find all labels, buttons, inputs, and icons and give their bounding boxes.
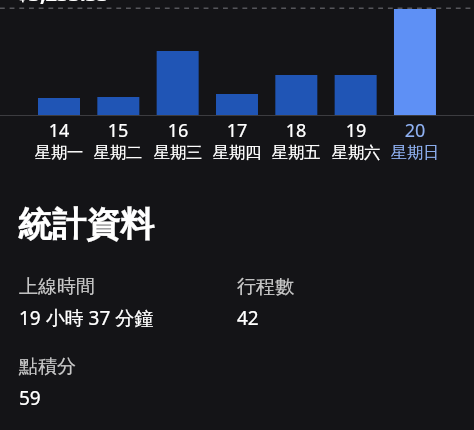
staticText: 19 [316, 118, 396, 143]
staticText: $3,233.33 [17, 0, 109, 7]
button[interactable]: 17 [197, 117, 277, 165]
staticText: 上線時間 [19, 275, 95, 299]
staticText: 星期二 [78, 142, 158, 162]
staticText: 行程數 [237, 275, 294, 299]
button[interactable]: 18 [256, 117, 336, 165]
button[interactable]: 14 [19, 117, 99, 165]
staticText: 16 [138, 118, 218, 143]
button[interactable]: 20 [375, 117, 455, 165]
button[interactable]: 16 [138, 117, 218, 165]
staticText: 星期四 [197, 142, 277, 162]
staticText: 18 [256, 118, 336, 143]
staticText: 統計資料 [18, 203, 154, 246]
staticText: 42 [237, 305, 259, 331]
staticText: 14 [19, 118, 99, 143]
staticText: 星期六 [316, 142, 396, 162]
staticText: 17 [197, 118, 277, 143]
button[interactable]: 19 [316, 117, 396, 165]
staticText: 點積分 [19, 355, 76, 379]
button[interactable]: 行程數 [237, 275, 447, 331]
staticText: 20 [375, 118, 455, 143]
staticText: 星期五 [256, 142, 336, 162]
staticText: 星期日 [375, 142, 455, 162]
staticText: 星期三 [138, 142, 218, 162]
button[interactable]: 15 [78, 117, 158, 165]
button[interactable]: 上線時間 [19, 275, 229, 331]
button[interactable]: 點積分 [19, 355, 229, 411]
staticText: 19 小時 37 分鐘 [19, 305, 154, 331]
staticText: 15 [78, 118, 158, 143]
staticText: 星期一 [19, 142, 99, 162]
staticText: 59 [19, 385, 41, 411]
